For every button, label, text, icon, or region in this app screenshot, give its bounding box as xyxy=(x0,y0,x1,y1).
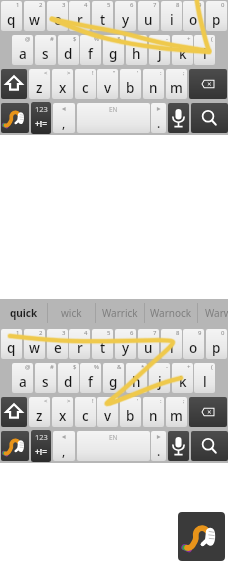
staticText: q xyxy=(7,339,16,357)
button[interactable]: wick xyxy=(47,299,96,327)
button[interactable]: 2 xyxy=(24,1,45,31)
button[interactable]: . xyxy=(151,103,166,133)
staticText: : xyxy=(160,69,162,77)
button[interactable]: : xyxy=(143,397,164,427)
button[interactable]: Swype xyxy=(178,512,225,561)
button[interactable]: Backspace xyxy=(189,69,227,99)
button[interactable]: 8 xyxy=(161,329,182,359)
button[interactable]: + xyxy=(172,35,193,65)
staticText: # xyxy=(50,363,54,371)
button[interactable]: 7 xyxy=(138,329,159,359)
button[interactable]: Shift xyxy=(1,397,27,427)
button[interactable]: % xyxy=(80,363,101,393)
staticText: 5 xyxy=(107,1,111,9)
button[interactable]: 0 xyxy=(206,1,227,31)
button[interactable]: ' xyxy=(120,397,141,427)
button[interactable]: , xyxy=(53,103,75,133)
button[interactable]: Shift xyxy=(1,69,27,99)
button[interactable]: Space xyxy=(77,431,150,461)
button[interactable]: ! xyxy=(75,69,96,99)
staticText: s xyxy=(42,373,49,391)
staticText: w xyxy=(29,11,40,29)
button[interactable]: ; xyxy=(166,69,187,99)
button[interactable]: - xyxy=(149,363,170,393)
button[interactable]: * xyxy=(126,363,147,393)
button[interactable]: + xyxy=(172,363,193,393)
button[interactable]: Voice input xyxy=(168,103,189,133)
button[interactable]: @ xyxy=(12,363,33,393)
staticText: 9 xyxy=(198,1,202,9)
button[interactable]: 0 xyxy=(206,329,227,359)
button[interactable]: # xyxy=(35,35,56,65)
button[interactable]: < xyxy=(29,69,50,99)
button[interactable]: $ xyxy=(58,363,79,393)
button[interactable]: : xyxy=(143,69,164,99)
button[interactable]: " xyxy=(97,397,118,427)
button[interactable]: 4 xyxy=(69,329,90,359)
staticText: - xyxy=(166,35,168,43)
button[interactable]: Symbols xyxy=(31,430,51,462)
button[interactable]: % xyxy=(80,35,101,65)
button[interactable]: Swype xyxy=(1,103,29,133)
button[interactable]: & xyxy=(103,363,124,393)
button[interactable]: 3 xyxy=(47,329,68,359)
button[interactable]: 4 xyxy=(69,1,90,31)
button[interactable]: 9 xyxy=(183,1,204,31)
button[interactable]: Warrick xyxy=(95,299,144,327)
button[interactable]: . xyxy=(151,431,166,461)
staticText: $ xyxy=(73,363,77,371)
button[interactable]: 2 xyxy=(24,329,45,359)
staticText: . xyxy=(157,443,161,459)
button[interactable]: 6 xyxy=(115,1,136,31)
staticText: ( xyxy=(211,35,213,43)
staticText: a xyxy=(19,373,27,391)
button[interactable]: 7 xyxy=(138,1,159,31)
button[interactable]: 5 xyxy=(92,329,113,359)
button[interactable]: - xyxy=(149,35,170,65)
button[interactable]: Warnock xyxy=(144,299,197,327)
staticText: z xyxy=(36,79,43,97)
button[interactable]: Warw xyxy=(197,299,228,327)
button[interactable]: ; xyxy=(166,397,187,427)
button[interactable]: > xyxy=(52,69,73,99)
button[interactable]: 8 xyxy=(161,1,182,31)
button[interactable]: > xyxy=(52,397,73,427)
button[interactable]: Space xyxy=(77,103,150,133)
button[interactable]: & xyxy=(103,35,124,65)
button[interactable]: , xyxy=(53,431,75,461)
staticText: 123 xyxy=(35,432,48,442)
button[interactable]: 1 xyxy=(1,329,22,359)
button[interactable]: " xyxy=(97,69,118,99)
staticText: ; xyxy=(183,397,185,405)
staticText: ; xyxy=(183,69,185,77)
button[interactable]: 3 xyxy=(47,1,68,31)
button[interactable]: ! xyxy=(75,397,96,427)
button[interactable]: quick xyxy=(0,299,47,327)
button[interactable]: $ xyxy=(58,35,79,65)
button[interactable]: Search xyxy=(191,103,228,133)
button[interactable]: Backspace xyxy=(189,397,227,427)
staticText: n xyxy=(149,407,158,425)
button[interactable]: 9 xyxy=(183,329,204,359)
button[interactable]: < xyxy=(29,397,50,427)
staticText: " xyxy=(113,69,116,77)
button[interactable]: Search xyxy=(191,431,228,461)
button[interactable]: * xyxy=(126,35,147,65)
staticText: 123 xyxy=(35,104,48,114)
staticText: u xyxy=(144,339,153,357)
staticText: y xyxy=(122,11,130,29)
button[interactable]: Swype xyxy=(1,431,29,461)
button[interactable]: 1 xyxy=(1,1,22,31)
button[interactable]: 6 xyxy=(115,329,136,359)
staticText: h xyxy=(132,45,141,63)
button[interactable]: ' xyxy=(120,69,141,99)
button[interactable]: # xyxy=(35,363,56,393)
button[interactable]: 5 xyxy=(92,1,113,31)
button[interactable]: ( xyxy=(194,363,215,393)
staticText: % xyxy=(94,363,99,371)
staticText: : xyxy=(160,397,162,405)
button[interactable]: @ xyxy=(12,35,33,65)
button[interactable]: Voice input xyxy=(168,431,189,461)
button[interactable]: ( xyxy=(194,35,215,65)
button[interactable]: Symbols xyxy=(31,102,51,134)
